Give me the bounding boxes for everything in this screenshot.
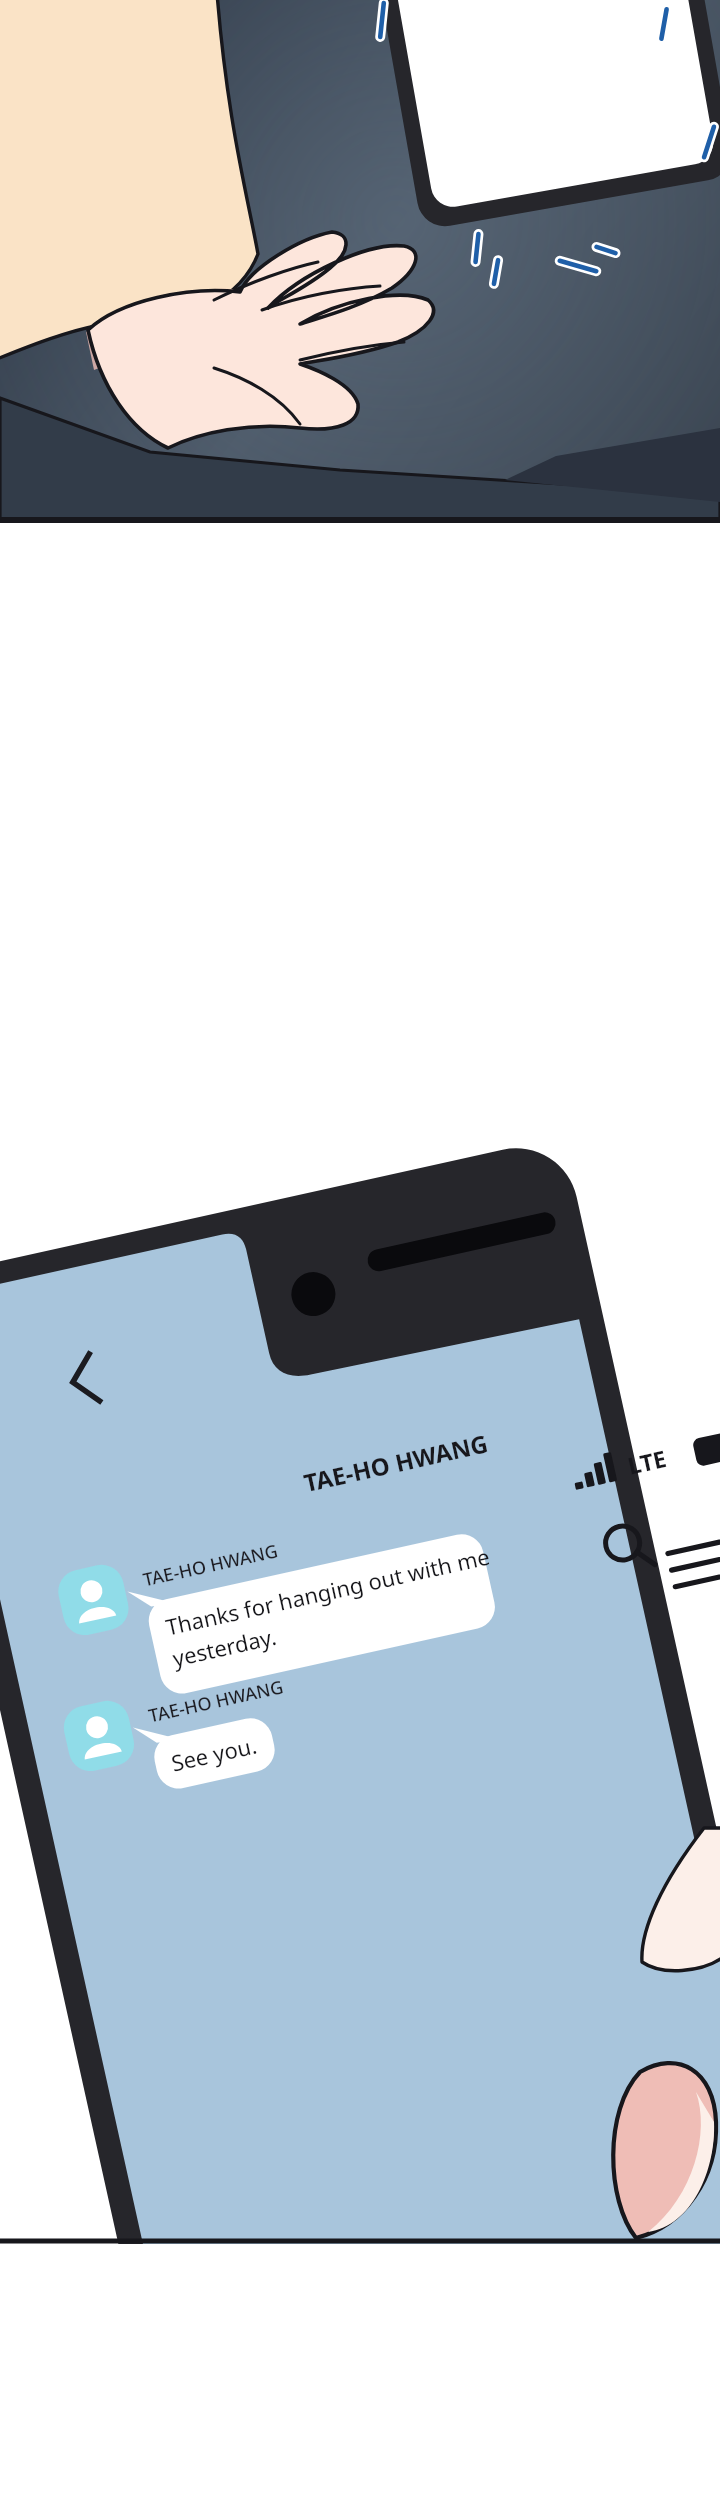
button[interactable]: Comic panel: chat screen	[0, 0, 720, 2500]
